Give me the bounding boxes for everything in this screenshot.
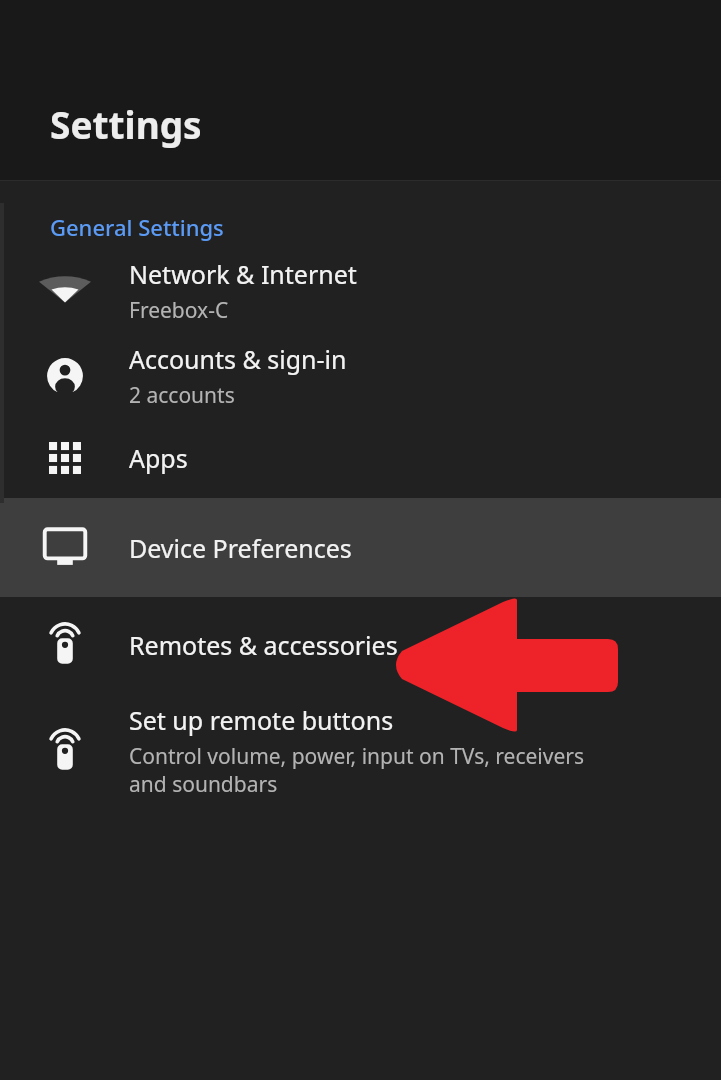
staticText: General Settings bbox=[50, 212, 224, 242]
other: Device Preferences bbox=[39, 522, 91, 574]
staticText: Network & Internet bbox=[129, 257, 357, 291]
staticText: Device Preferences bbox=[129, 531, 352, 565]
staticText: Settings bbox=[50, 99, 202, 149]
other: Remote bbox=[39, 619, 91, 671]
staticText: Remotes & accessories bbox=[129, 628, 398, 662]
staticText: 2 accounts bbox=[129, 381, 235, 410]
other: Network and Internet bbox=[39, 265, 91, 317]
staticText: Control volume, power, input on TVs, rec… bbox=[129, 742, 585, 798]
button[interactable]: Accounts and sign-in bbox=[0, 333, 721, 418]
button[interactable]: Device Preferences bbox=[0, 498, 721, 597]
button[interactable]: Remote bbox=[0, 597, 721, 693]
button[interactable]: Apps bbox=[0, 418, 721, 498]
button[interactable]: Remote bbox=[0, 693, 721, 808]
button[interactable]: Network and Internet bbox=[0, 248, 721, 333]
other: Accounts and sign-in bbox=[39, 350, 91, 402]
staticText: Apps bbox=[129, 441, 188, 475]
staticText: Set up remote buttons bbox=[129, 703, 394, 737]
staticText: Freebox-C bbox=[129, 296, 229, 325]
staticText: Accounts & sign-in bbox=[129, 342, 347, 376]
other: Remote bbox=[39, 725, 91, 777]
other: Apps bbox=[39, 432, 91, 484]
